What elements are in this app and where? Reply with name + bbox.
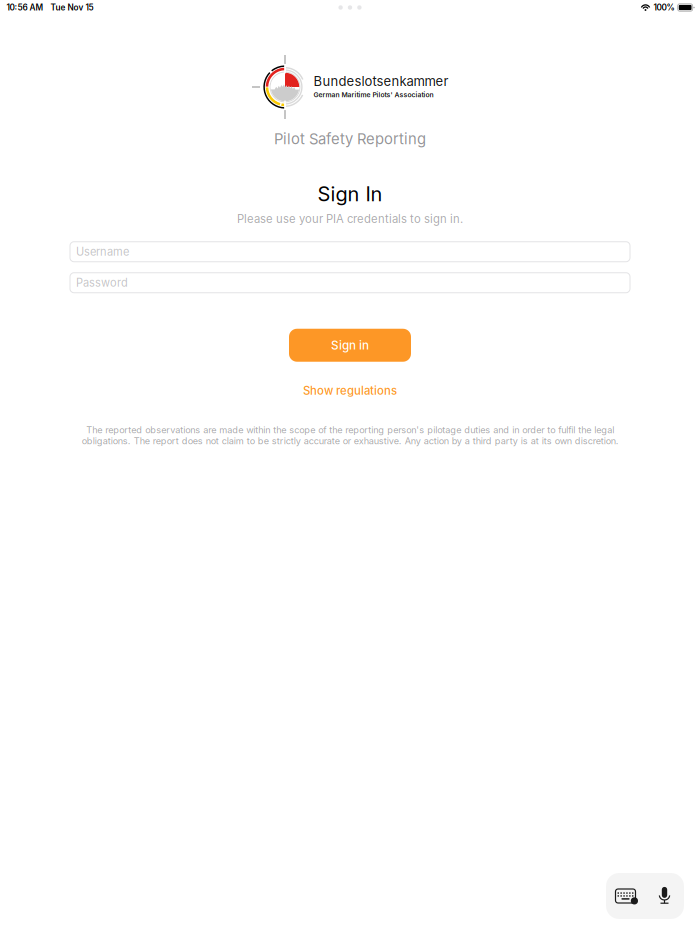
staticText: Username [76, 245, 129, 258]
staticText: Password [76, 276, 128, 289]
staticText: Please use your PIA credentials to sign … [237, 212, 463, 226]
staticText: Sign in [331, 338, 369, 352]
staticText: Bundeslotsenkammer [313, 73, 448, 89]
button[interactable]: Password [70, 273, 630, 293]
staticText: Pilot Safety Reporting [274, 130, 426, 148]
button[interactable]: Username [70, 242, 630, 262]
button[interactable]: Sign in [289, 329, 411, 362]
staticText: 10:56 AM [6, 2, 43, 12]
staticText: German Maritime Pilots' Association [313, 90, 433, 99]
button[interactable]: Show regulations [295, 380, 405, 401]
staticText: 100% [653, 2, 674, 12]
button[interactable]: Show Keyboard [606, 873, 645, 919]
staticText: Tue Nov 15 [50, 2, 93, 12]
staticText: The reported observations are made withi… [81, 424, 618, 447]
button[interactable]: Dictation [645, 873, 684, 919]
staticText: Sign In [317, 182, 382, 206]
staticText: Show regulations [303, 384, 397, 397]
